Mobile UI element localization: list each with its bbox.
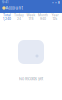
staticText: 12k xyxy=(52,17,57,21)
staticText: Total xyxy=(3,13,11,17)
staticText: Today xyxy=(14,13,24,17)
staticText: No records yet xyxy=(19,77,43,81)
staticText: 9:41 xyxy=(2,0,8,4)
staticText: ▪ ▪ ▮ xyxy=(52,0,60,4)
staticText: Year xyxy=(51,13,58,17)
staticText: Account xyxy=(5,5,22,11)
staticText: Month xyxy=(38,13,48,17)
staticText: Week xyxy=(26,13,35,17)
staticText: 178 xyxy=(28,17,33,21)
staticText: 24 xyxy=(17,17,21,21)
staticText: 1,240 xyxy=(3,17,11,21)
staticText: 940 xyxy=(40,17,46,21)
